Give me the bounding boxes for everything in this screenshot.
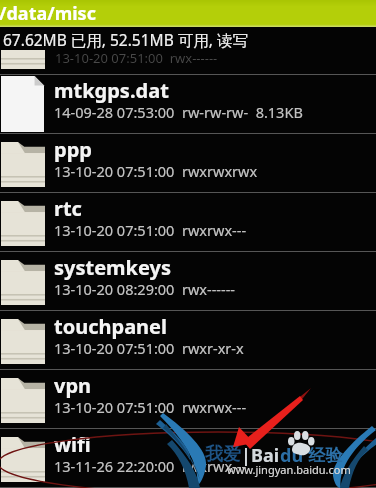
button[interactable]: wifi bbox=[0, 429, 376, 488]
staticText: systemkeys bbox=[54, 254, 172, 281]
staticText: |Bai bbox=[241, 443, 280, 468]
staticText: rtc bbox=[55, 22, 83, 49]
button[interactable]: mtkgps.dat bbox=[0, 75, 376, 134]
staticText: 我爱 bbox=[205, 443, 241, 466]
button[interactable]: /data/misc bbox=[0, 0, 376, 27]
button[interactable]: vpn bbox=[0, 370, 376, 429]
staticText: www.jingyan.baidu.com bbox=[227, 462, 351, 477]
staticText: 13-11-26 22:20:00 rwxrwx--- bbox=[54, 456, 247, 476]
staticText: mtkgps.dat bbox=[54, 77, 169, 104]
staticText: du bbox=[280, 443, 304, 468]
staticText: 13-10-20 07:51:00 rwxrwxrwx bbox=[54, 161, 258, 181]
staticText: 13-10-20 08:29:00 rwx------ bbox=[54, 279, 236, 299]
staticText: 14-09-28 07:53:00 rw-rw-rw- 8.13KB bbox=[54, 102, 303, 122]
staticText: 67.62MB 已用, 52.51MB 可用, 读写 bbox=[3, 29, 248, 50]
button[interactable]: rtc bbox=[0, 193, 376, 252]
staticText: rtc bbox=[54, 195, 82, 222]
button[interactable]: ppp bbox=[0, 134, 376, 193]
staticText: vpn bbox=[54, 372, 92, 399]
staticText: 13-10-20 07:51:00 rwx------ bbox=[55, 49, 218, 67]
button[interactable]: touchpanel bbox=[0, 311, 376, 370]
staticText: /data/misc bbox=[0, 1, 96, 26]
staticText: 13-10-20 07:51:00 rwxrwx--- bbox=[54, 397, 247, 417]
staticText: touchpanel bbox=[54, 313, 168, 340]
button[interactable]: systemkeys bbox=[0, 252, 376, 311]
staticText: ppp bbox=[54, 136, 92, 163]
staticText: 经验 bbox=[304, 443, 343, 466]
staticText: 13-10-20 07:51:00 rwxr-xr-x bbox=[54, 338, 244, 358]
staticText: 13-10-20 07:51:00 rwxrwx--- bbox=[54, 220, 247, 240]
staticText: wifi bbox=[54, 431, 91, 458]
